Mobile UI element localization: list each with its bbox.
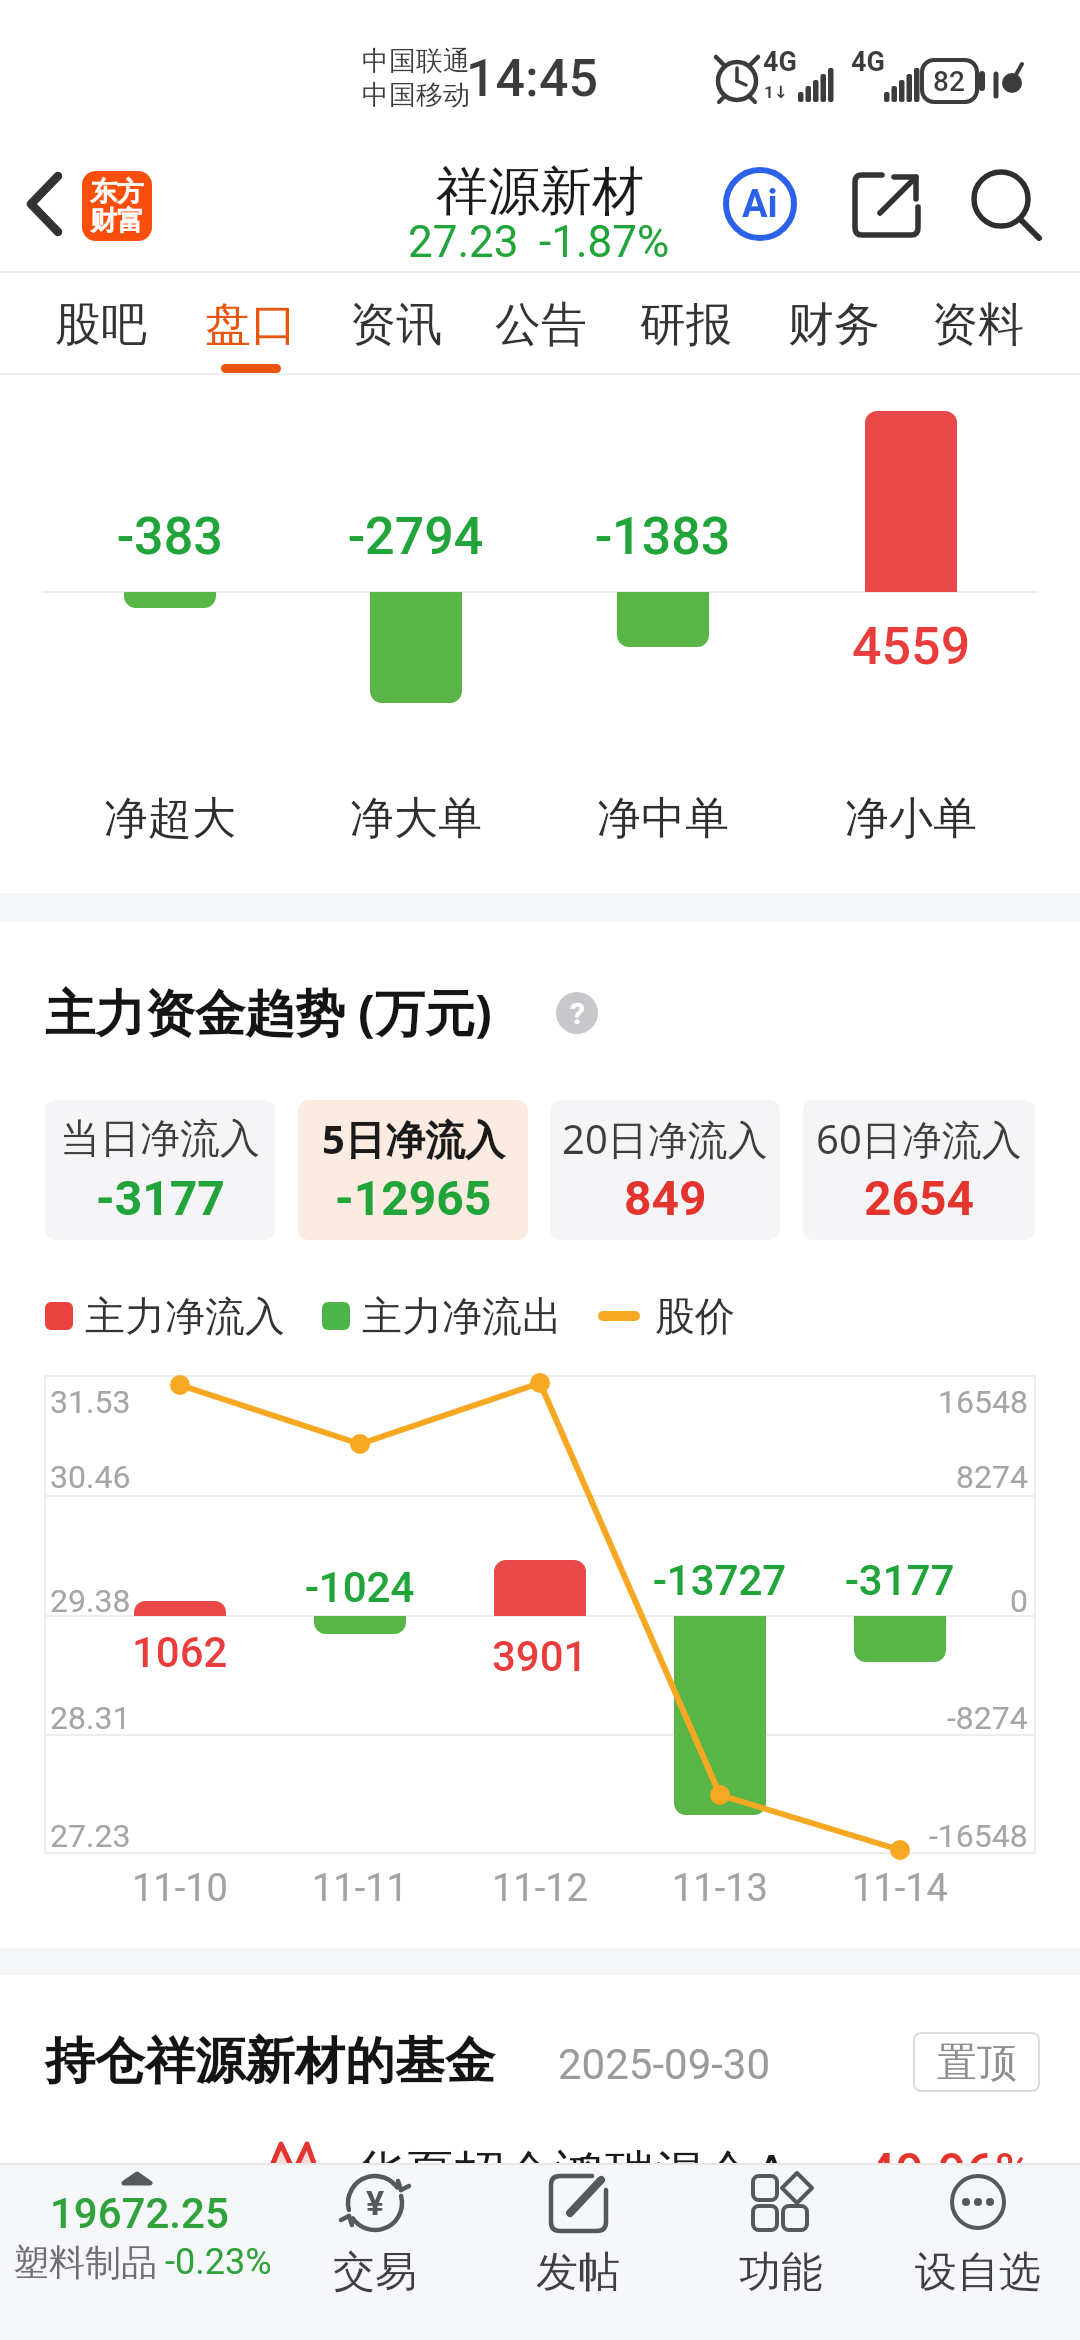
staticText: 资讯 <box>350 296 442 354</box>
staticText: 塑料制品 <box>13 2240 157 2285</box>
staticText: -0.23% <box>165 2241 272 2283</box>
staticText: 1↓ <box>764 82 788 102</box>
staticText: 4G <box>763 46 797 78</box>
staticText: 5日净流入 <box>322 1111 505 1166</box>
staticText: 11-11 <box>312 1866 408 1911</box>
staticText: 祥源新材 <box>436 159 644 225</box>
button[interactable] <box>45 2130 1035 2176</box>
button[interactable] <box>20 165 75 243</box>
staticText: 30.46 <box>50 1458 131 1496</box>
button[interactable]: 当日净流入 <box>45 1100 275 1240</box>
button[interactable]: 财务 <box>759 280 909 370</box>
staticText: 28.31 <box>50 1699 131 1737</box>
button[interactable]: 功能 <box>701 2242 861 2302</box>
staticText: 交易 <box>333 2246 417 2299</box>
staticText: 14:45 <box>466 48 599 109</box>
staticText: 11-14 <box>852 1866 948 1911</box>
staticText: 4559 <box>852 616 971 677</box>
staticText: -12965 <box>335 1170 492 1226</box>
staticText: 16548 <box>938 1383 1028 1421</box>
staticText: ¥ <box>366 2183 385 2223</box>
button[interactable] <box>965 165 1050 245</box>
staticText: 净中单 <box>597 791 729 846</box>
staticText: 19672.25 <box>50 2189 229 2238</box>
staticText: 11-12 <box>492 1866 588 1911</box>
staticText: -13727 <box>653 1556 787 1605</box>
button[interactable]: 20日净流入 <box>550 1100 780 1240</box>
staticText: 中国联通 <box>362 44 470 78</box>
button[interactable]: 资讯 <box>321 280 471 370</box>
staticText: 主力净流出 <box>362 1291 562 1341</box>
staticText: -3177 <box>845 1556 955 1605</box>
staticText: 盘口 <box>205 296 297 354</box>
button[interactable]: 置顶 <box>913 2032 1040 2092</box>
staticText: 财富 <box>90 204 144 238</box>
staticText: -383 <box>117 506 223 567</box>
staticText: 持仓祥源新材的基金 <box>45 2030 495 2093</box>
button[interactable]: 发帖 <box>498 2242 658 2302</box>
button[interactable]: 5日净流入 <box>298 1100 528 1240</box>
staticText: 股吧 <box>55 296 147 354</box>
button[interactable] <box>0 2180 300 2340</box>
staticText: 东方 <box>90 175 144 209</box>
button[interactable]: 交易 <box>295 2242 455 2302</box>
staticText: 置顶 <box>937 2037 1017 2087</box>
staticText: 主力净流入 <box>85 1291 285 1341</box>
staticText: 华夏招金鸿瑞混合A <box>355 2138 788 2206</box>
staticText: 82 <box>933 65 965 98</box>
staticText: 49.96% <box>867 2143 1032 2202</box>
staticText: 3901 <box>492 1632 588 1681</box>
button[interactable]: 设自选 <box>888 2242 1068 2302</box>
staticText: 29.38 <box>50 1582 131 1620</box>
button[interactable]: 60日净流入 <box>803 1100 1035 1240</box>
staticText: 研报 <box>640 296 732 354</box>
button[interactable] <box>845 165 927 245</box>
staticText: Ai <box>742 182 778 227</box>
staticText: ? <box>570 996 585 1031</box>
staticText: 公告 <box>495 296 587 354</box>
staticText: 净超大 <box>104 791 236 846</box>
staticText: 主力资金趋势 (万元) <box>45 978 492 1046</box>
staticText: 净小单 <box>845 791 977 846</box>
button[interactable]: 股吧 <box>26 280 176 370</box>
staticText: 设自选 <box>915 2246 1041 2299</box>
button[interactable]: 东方 <box>82 171 152 241</box>
staticText: 60日净流入 <box>816 1111 1022 1166</box>
staticText: 功能 <box>739 2246 823 2299</box>
staticText: 当日净流入 <box>60 1113 260 1163</box>
staticText: 股价 <box>655 1291 735 1341</box>
staticText: -3177 <box>96 1170 225 1226</box>
button[interactable]: 资料 <box>903 280 1053 370</box>
staticText: 净大单 <box>350 791 482 846</box>
button[interactable]: 盘口 <box>176 280 326 370</box>
staticText: -8274 <box>947 1699 1028 1737</box>
staticText: 中国移动 <box>362 78 470 112</box>
button[interactable]: Ai <box>723 167 797 241</box>
staticText: 20日净流入 <box>562 1111 768 1166</box>
staticText: 11-13 <box>672 1866 768 1911</box>
staticText: 31.53 <box>50 1383 131 1421</box>
staticText: 849 <box>624 1170 707 1226</box>
staticText: -1383 <box>595 506 731 567</box>
staticText: 资料 <box>932 296 1024 354</box>
staticText: -16548 <box>929 1817 1028 1855</box>
staticText: 财务 <box>788 296 880 354</box>
staticText: 1062 <box>132 1628 228 1677</box>
staticText: 发帖 <box>536 2246 620 2299</box>
staticText: -2794 <box>348 506 484 567</box>
staticText: 4G <box>851 46 885 78</box>
button[interactable]: 研报 <box>611 280 761 370</box>
staticText: 27.23 <box>408 216 519 268</box>
staticText: 11-10 <box>132 1866 228 1911</box>
staticText: 2654 <box>864 1170 975 1226</box>
staticText: -1024 <box>305 1563 415 1612</box>
staticText: 0 <box>1010 1582 1028 1620</box>
staticText: 8274 <box>956 1458 1028 1496</box>
button[interactable]: 公告 <box>466 280 616 370</box>
staticText: 27.23 <box>50 1817 131 1855</box>
staticText: -1.87% <box>539 216 670 268</box>
staticText: 2025-09-30 <box>558 2040 771 2089</box>
button[interactable]: ? <box>556 992 598 1034</box>
